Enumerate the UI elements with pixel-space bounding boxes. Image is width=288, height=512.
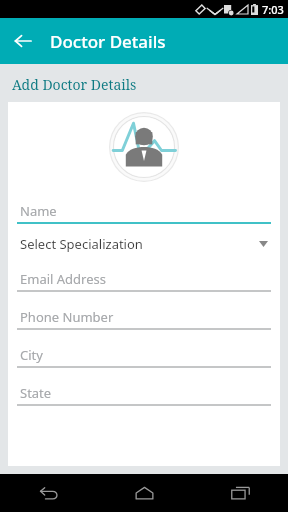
button[interactable]: Back <box>0 474 96 512</box>
button[interactable]: Select Specialization <box>13 232 275 256</box>
button[interactable]: Back <box>0 18 46 64</box>
button[interactable]: Email Address <box>13 268 275 293</box>
staticText: Name <box>20 202 57 220</box>
button[interactable]: State <box>13 382 275 407</box>
staticText: State <box>20 384 52 402</box>
staticText: Select Specialization <box>20 235 143 253</box>
button[interactable]: City <box>13 344 275 369</box>
staticText: City <box>20 346 43 364</box>
button[interactable]: Phone Number <box>13 306 275 331</box>
button[interactable]: Name <box>13 200 275 225</box>
staticText: 7:03 <box>262 2 284 17</box>
staticText: Email Address <box>20 270 106 288</box>
staticText: Add Doctor Details <box>12 75 137 94</box>
button[interactable]: Home <box>96 474 192 512</box>
button[interactable]: Recent apps <box>192 474 288 512</box>
staticText: Doctor Details <box>50 30 166 53</box>
staticText: Phone Number <box>20 308 114 326</box>
